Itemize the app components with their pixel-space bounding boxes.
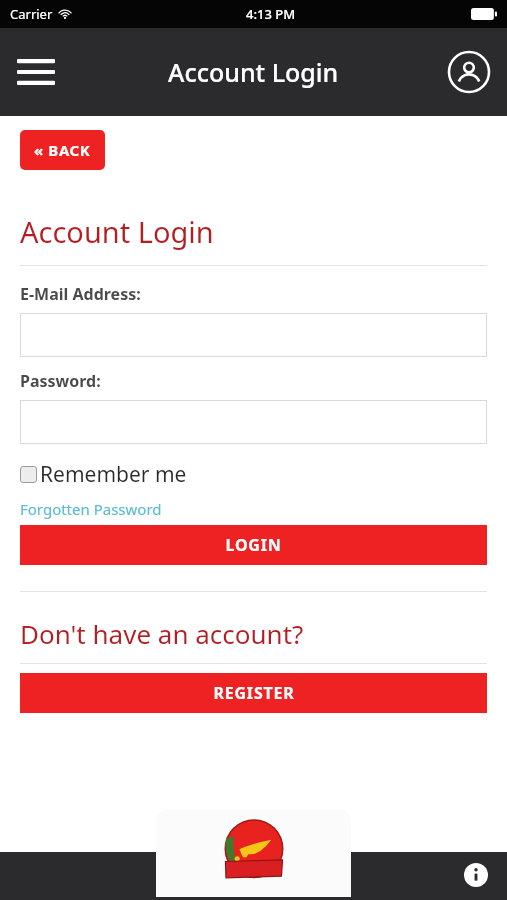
button[interactable] (20, 313, 487, 357)
button[interactable]: Remember me (20, 460, 187, 489)
staticText: E-Mail Address: (20, 283, 141, 305)
staticText: Remember me (40, 460, 187, 489)
button[interactable] (20, 400, 487, 444)
button[interactable]: « BACK (20, 130, 105, 170)
button[interactable]: LOGIN (20, 525, 487, 565)
button[interactable]: Menu (8, 44, 64, 100)
staticText: 4:13 PM (246, 5, 296, 23)
button[interactable] (156, 810, 351, 897)
staticText: Don't have an account? (20, 616, 304, 651)
staticText: LOGIN (225, 534, 282, 556)
staticText: REGISTER (213, 682, 295, 704)
button[interactable]: REGISTER (20, 673, 487, 713)
staticText: Account Login (20, 212, 214, 251)
staticText: Password: (20, 370, 101, 392)
staticText: Carrier (10, 5, 53, 23)
staticText: « BACK (34, 140, 91, 160)
button[interactable]: Forgotten Password (20, 499, 162, 519)
button[interactable]: Account (443, 46, 495, 98)
staticText: Account Login (168, 55, 339, 89)
button[interactable]: Information (463, 862, 489, 888)
